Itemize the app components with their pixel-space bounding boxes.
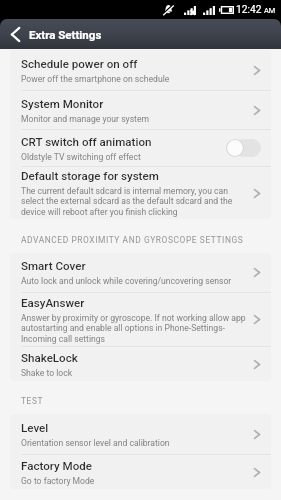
staticText: ADVANCED PROXIMITY AND GYROSCOPE SETTING… [21,235,244,245]
other: Open [253,105,261,116]
staticText: Extra Settings [29,28,102,41]
staticText: Auto lock and unlock while covering/unco… [21,276,232,286]
staticText: ShakeLock [21,351,78,365]
button[interactable]: Level [10,414,271,454]
button[interactable]: Back [7,26,23,42]
staticText: CRT switch off animation [21,135,152,149]
other: Open [253,429,261,440]
button[interactable]: ShakeLock [10,347,271,381]
staticText: 12:42 [236,4,262,16]
staticText: Go to factory Mode [21,476,95,486]
staticText: Factory Mode [21,459,93,473]
staticText: Shake to lock [21,368,73,378]
button[interactable]: EasyAnswer [10,293,271,346]
staticText: The current default sdcard is internal m… [21,186,246,217]
button[interactable]: Default storage for system [10,167,271,219]
other: Open [253,65,261,76]
staticText: Schedule power on off [21,57,138,71]
staticText: Power off the smartphone on schedule [21,74,170,84]
button[interactable]: CRT switch off animation [10,130,271,166]
button[interactable]: System Monitor [10,91,271,129]
other: Silent mode [163,4,174,15]
staticText: AM [264,6,276,15]
staticText: Orientation sensor level and calibration [21,438,170,448]
button[interactable]: Factory Mode [10,455,271,489]
button[interactable]: Smart Cover [10,253,271,292]
staticText: Level [21,421,49,435]
staticText: Default storage for system [21,169,159,183]
other: Open [253,267,261,278]
button[interactable]: Schedule power on off [10,50,271,90]
other: Open [253,359,261,370]
other: Open [253,467,261,478]
staticText: TEST [21,396,44,406]
other: Open [253,188,261,199]
staticText: Smart Cover [21,259,86,273]
staticText: Oldstyle TV switching off effect [21,152,141,162]
staticText: Answer by proximity or gyroscope. If not… [21,313,246,344]
other: Open [253,314,261,325]
staticText: System Monitor [21,97,104,111]
staticText: EasyAnswer [21,296,85,310]
other: Battery [219,6,234,14]
staticText: Monitor and manage your system [21,114,149,124]
button[interactable]: CRT switch off animation toggle [226,139,261,157]
